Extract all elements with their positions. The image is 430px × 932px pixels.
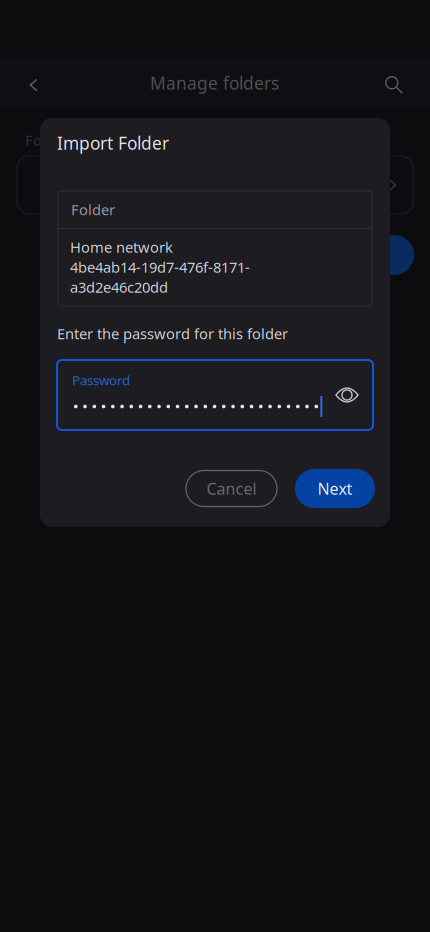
button[interactable]: Next [295,469,375,508]
button[interactable]: Show password [327,372,367,418]
staticText: Enter the password for this folder [57,324,288,343]
staticText: Manage folders [150,71,279,94]
staticText: Next [317,478,352,499]
button[interactable] [17,156,413,214]
staticText: Import Folder [57,131,169,154]
button[interactable]: Search [373,58,421,106]
staticText: Cancel [206,478,256,499]
staticText: Folders [25,130,76,150]
staticText: Home network [70,237,173,257]
button[interactable]: Cancel [186,470,277,506]
staticText: 4be4ab14-19d7-476f-8171- [70,257,250,277]
button[interactable]: Add folder [374,235,414,275]
staticText: Password [72,371,130,389]
staticText: a3d2e46c20dd [70,277,168,297]
staticText: Folder [71,200,115,219]
button[interactable]: Back [8,58,56,106]
